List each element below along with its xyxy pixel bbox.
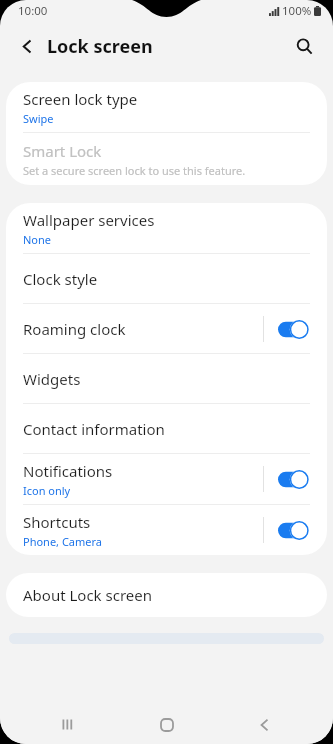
button[interactable]: Screen lock type [6,82,327,132]
button[interactable]: Clock style [6,254,327,303]
button[interactable]: Widgets [6,354,327,403]
staticText: Icon only [23,483,71,498]
staticText: Swipe [23,111,54,126]
button[interactable]: Back [235,705,295,744]
button[interactable]: Smart Lock [6,133,327,185]
button[interactable]: Wallpaper services [6,203,327,253]
staticText: Clock style [23,269,98,289]
staticText: Phone, Camera [23,534,103,549]
button[interactable]: Recents [38,705,98,744]
staticText: None [23,232,52,247]
staticText: Contact information [23,419,165,439]
button[interactable]: About Lock screen [6,573,327,617]
staticText: Roaming clock [23,319,126,339]
button[interactable]: Shortcuts switch [277,518,313,542]
button[interactable]: Roaming clock [6,304,327,353]
staticText: Wallpaper services [23,210,155,230]
staticText: 10:00 [18,3,48,19]
button[interactable]: Shortcuts [6,505,327,555]
button[interactable]: Search [287,29,321,63]
button[interactable]: Roaming clock switch [277,317,313,341]
button[interactable]: Back [10,29,44,63]
staticText: About Lock screen [23,585,152,605]
staticText: Notifications [23,461,113,481]
button[interactable]: Notifications switch [277,467,313,491]
staticText: 100% [282,3,312,19]
staticText: Smart Lock [23,141,102,161]
button[interactable]: Notifications [6,454,327,504]
staticText: Widgets [23,369,81,389]
staticText: Lock screen [47,34,153,59]
staticText: Shortcuts [23,512,91,532]
button[interactable]: Contact information [6,404,327,453]
button[interactable]: Home [137,705,197,744]
staticText: Set a secure screen lock to use this fea… [23,163,246,178]
staticText: Screen lock type [23,89,138,109]
